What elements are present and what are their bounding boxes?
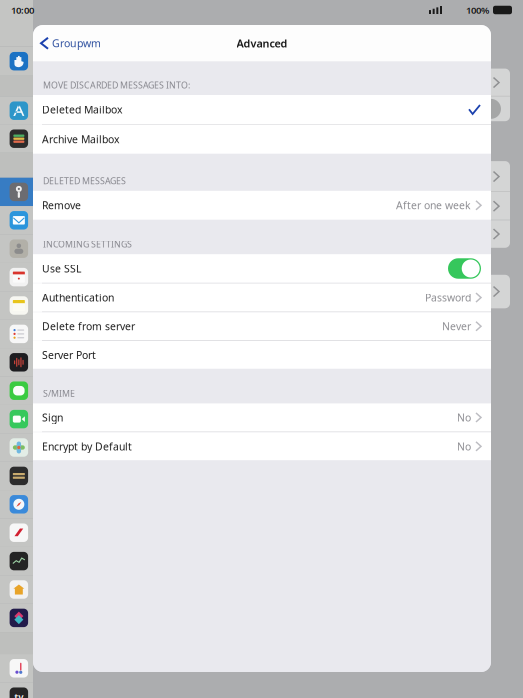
button[interactable]: Settings section: [0, 462, 33, 490]
staticText: Deleted Mailbox: [42, 102, 123, 117]
button[interactable]: Settings section: [0, 433, 33, 462]
staticText: Password: [425, 290, 471, 305]
button[interactable]: Settings section: [0, 490, 33, 518]
button[interactable]: Settings section: [0, 547, 33, 575]
button[interactable]: Settings section: [0, 575, 33, 604]
staticText: 100%: [466, 3, 489, 17]
button[interactable]: Settings section: [0, 682, 33, 698]
button[interactable]: Settings section: [0, 47, 33, 76]
staticText: Use SSL: [42, 261, 81, 276]
staticText: Archive Mailbox: [42, 132, 120, 146]
button[interactable]: Authentication: [33, 284, 491, 311]
button[interactable]: Encrypt by Default: [33, 432, 491, 460]
button[interactable]: Deleted Mailbox: [33, 95, 491, 124]
staticText: 10:00: [11, 3, 34, 17]
staticText: After one week: [396, 198, 471, 212]
button[interactable]: Settings section: [0, 206, 33, 234]
button[interactable]: Settings section: [0, 234, 33, 263]
staticText: INCOMING SETTINGS: [43, 238, 132, 250]
button[interactable]: Settings section: [0, 518, 33, 547]
staticText: DELETED MESSAGES: [43, 175, 126, 187]
button[interactable]: Settings section: [0, 178, 33, 206]
button[interactable]: Sign: [33, 403, 491, 431]
button[interactable]: Settings section: [0, 263, 33, 291]
staticText: Remove: [42, 198, 81, 212]
button[interactable]: Settings section: [0, 125, 33, 153]
button[interactable]: Remove: [33, 191, 491, 220]
button[interactable]: Settings section: [0, 291, 33, 320]
button[interactable]: Delete from server: [33, 312, 491, 340]
staticText: Authentication: [42, 290, 114, 305]
button[interactable]: Archive Mailbox: [33, 125, 491, 154]
staticText: Encrypt by Default: [42, 439, 132, 453]
button[interactable]: Settings section: [0, 604, 33, 632]
button[interactable]: Settings section: [0, 320, 33, 348]
button[interactable]: Server Port: [33, 341, 491, 369]
button[interactable]: Settings section: [0, 405, 33, 433]
staticText: Server Port: [42, 348, 96, 362]
staticText: MOVE DISCARDED MESSAGES INTO:: [43, 79, 190, 91]
button[interactable]: Groupwm: [33, 27, 101, 59]
staticText: tv: [14, 690, 23, 698]
staticText: Sign: [42, 410, 63, 425]
staticText: Never: [442, 319, 471, 333]
button[interactable]: Settings section: [0, 654, 33, 682]
button[interactable]: Use SSL: [33, 254, 491, 283]
button[interactable]: Settings section: [0, 376, 33, 405]
staticText: Advanced: [236, 36, 287, 51]
button[interactable]: Settings section: [0, 97, 33, 125]
button[interactable]: Settings section: [0, 348, 33, 376]
staticText: Groupwm: [52, 36, 101, 50]
staticText: Delete from server: [42, 319, 135, 333]
staticText: No: [457, 439, 471, 453]
staticText: No: [457, 410, 471, 425]
staticText: S/MIME: [43, 387, 75, 399]
